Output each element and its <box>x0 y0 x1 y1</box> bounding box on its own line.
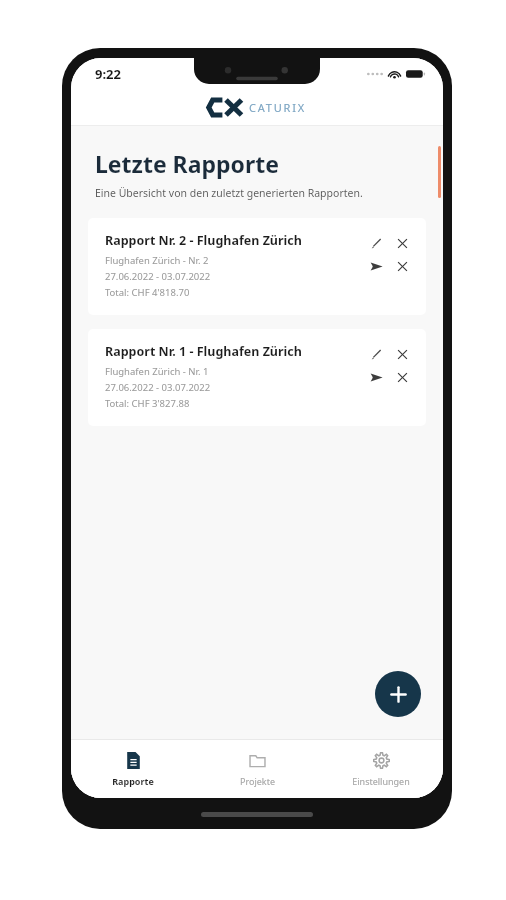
button[interactable]: Löschen <box>393 345 412 364</box>
staticText: Total: CHF 3'827.88 <box>105 397 190 410</box>
staticText: Einstellungen <box>352 775 410 787</box>
button[interactable]: Bearbeiten <box>367 345 386 364</box>
staticText: 27.06.2022 - 03.07.2022 <box>105 270 211 283</box>
button[interactable]: Bearbeiten <box>367 234 386 253</box>
staticText: Rapport Nr. 1 - Flughafen Zürich <box>105 343 302 360</box>
staticText: Letzte Rapporte <box>95 148 279 179</box>
button[interactable]: Löschen <box>393 234 412 253</box>
button[interactable]: Senden <box>367 257 386 276</box>
staticText: CATURIX <box>249 100 306 115</box>
button[interactable]: Projekte <box>195 740 319 798</box>
staticText: Rapport Nr. 2 - Flughafen Zürich <box>105 232 302 249</box>
button[interactable]: Löschen <box>393 368 412 387</box>
button[interactable]: Neuen Rapport erstellen <box>375 671 421 717</box>
button[interactable]: Einstellungen <box>319 740 443 798</box>
staticText: Total: CHF 4'818.70 <box>105 286 190 299</box>
staticText: Flughafen Zürich - Nr. 1 <box>105 365 209 378</box>
button[interactable]: Löschen <box>393 257 412 276</box>
staticText: Rapporte <box>112 775 154 787</box>
button[interactable]: Rapport Nr. 1 - Flughafen Zürich <box>88 329 426 426</box>
staticText: Projekte <box>240 775 275 787</box>
button[interactable]: Rapporte <box>71 740 195 798</box>
staticText: Flughafen Zürich - Nr. 2 <box>105 254 209 267</box>
staticText: 27.06.2022 - 03.07.2022 <box>105 381 211 394</box>
staticText: 9:22 <box>95 65 121 83</box>
staticText: Eine Übersicht von den zuletzt generiert… <box>95 186 363 200</box>
button[interactable]: Senden <box>367 368 386 387</box>
button[interactable]: Rapport Nr. 2 - Flughafen Zürich <box>88 218 426 315</box>
